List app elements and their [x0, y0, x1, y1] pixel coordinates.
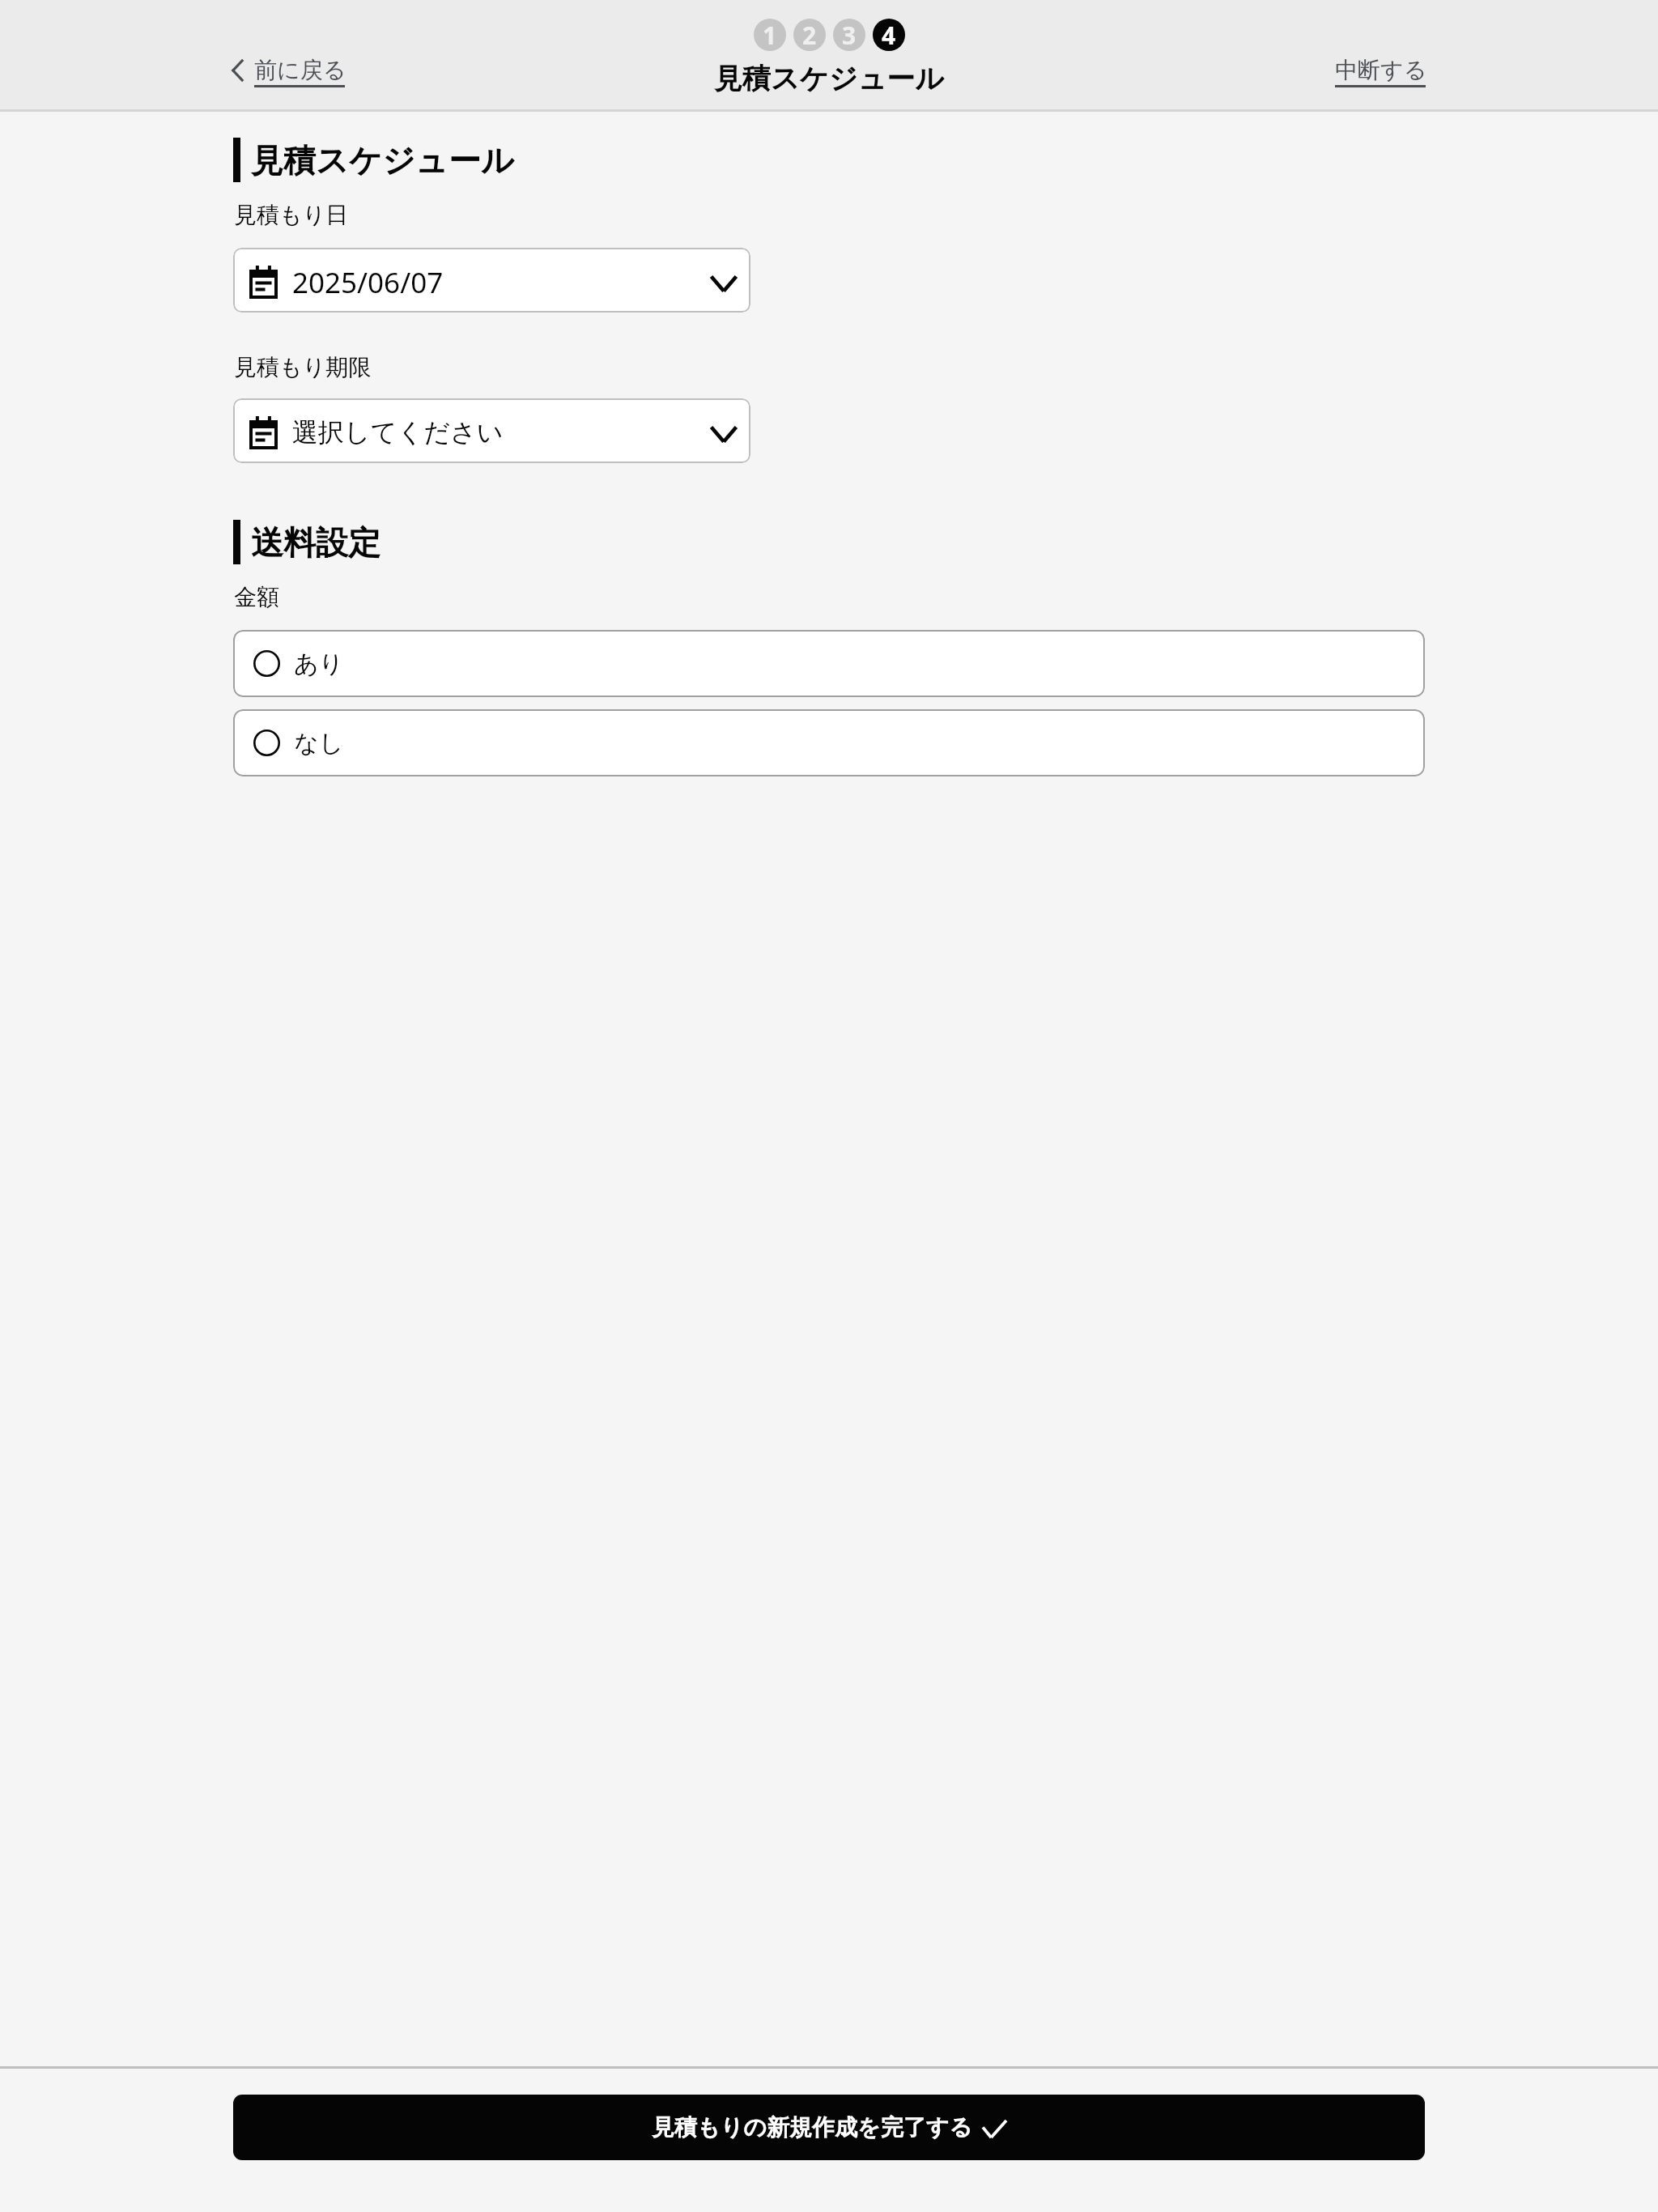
staticText: 選択してください	[292, 416, 504, 449]
staticText: 4	[882, 19, 896, 51]
staticText: 見積もり期限	[234, 353, 372, 381]
button[interactable]: 見積もりの新規作成を完了する	[233, 2095, 1425, 2160]
staticText: 2	[802, 19, 817, 51]
staticText: あり	[294, 649, 344, 679]
button[interactable]: ステップ 2	[793, 19, 826, 51]
button[interactable]: 中断する	[1335, 56, 1427, 87]
button[interactable]: 2025/06/07	[233, 248, 750, 313]
button[interactable]: ステップ 4	[873, 19, 905, 51]
button[interactable]: 前に戻る	[232, 56, 346, 87]
staticText: 送料設定	[251, 522, 380, 563]
staticText: 前に戻る	[254, 56, 346, 84]
staticText: 3	[842, 19, 857, 51]
button[interactable]: ステップ 3	[833, 19, 865, 51]
staticText: 2025/06/07	[292, 263, 444, 302]
staticText: 見積もり日	[234, 201, 349, 229]
staticText: 金額	[234, 583, 279, 611]
staticText: 見積スケジュール	[251, 140, 514, 181]
staticText: 見積もりの新規作成を完了する	[652, 2113, 972, 2142]
staticText: 中断する	[1335, 56, 1427, 84]
button[interactable]: 選択してください	[233, 398, 750, 463]
button[interactable]: なし	[233, 709, 1425, 776]
button[interactable]: あり	[233, 630, 1425, 697]
staticText: なし	[294, 728, 344, 759]
button[interactable]: ステップ 1	[754, 19, 786, 51]
staticText: 見積スケジュール	[714, 61, 945, 96]
staticText: 1	[763, 19, 777, 51]
